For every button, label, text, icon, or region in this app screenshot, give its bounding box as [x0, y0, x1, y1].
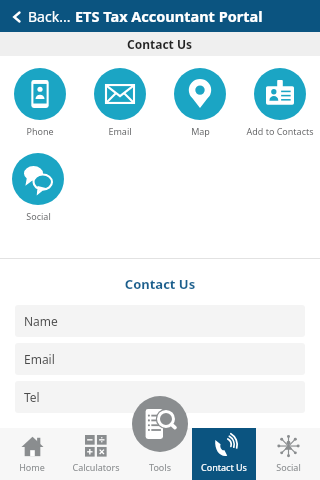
button[interactable]: Tel	[15, 381, 305, 413]
button[interactable]: Add to Contacts	[242, 66, 318, 139]
staticText: Email	[24, 351, 55, 367]
staticText: Name	[24, 313, 58, 329]
staticText: Contact Us	[201, 461, 247, 473]
button[interactable]: Social	[0, 151, 76, 224]
staticText: Add to Contacts	[246, 125, 314, 137]
button[interactable]: Phone	[2, 66, 78, 139]
button[interactable]: Name	[15, 305, 305, 337]
staticText: Back...	[28, 7, 71, 26]
staticText: Phone	[26, 125, 54, 137]
button[interactable]: Social	[256, 428, 320, 480]
staticText: Tel	[24, 389, 40, 405]
staticText: Contact Us	[0, 275, 320, 293]
button[interactable]: Contact Us	[192, 428, 256, 480]
button[interactable]: Map	[162, 66, 238, 139]
staticText: Social	[26, 210, 51, 222]
staticText: ETS Tax Accountant Portal	[75, 6, 263, 26]
staticText: Contact Us	[127, 36, 193, 52]
staticText: Social	[276, 461, 301, 473]
button[interactable]: Email	[15, 343, 305, 375]
staticText: Home	[19, 461, 45, 473]
staticText: Map	[191, 125, 210, 137]
staticText: Tools	[149, 461, 171, 473]
button[interactable]: Back...	[6, 7, 75, 26]
staticText: Calculators	[72, 461, 120, 473]
button[interactable]: Calculators	[64, 428, 128, 480]
button[interactable]: Home	[0, 428, 64, 480]
button[interactable]: Tools	[132, 396, 188, 452]
staticText: Email	[108, 125, 132, 137]
button[interactable]: Email	[82, 66, 158, 139]
button[interactable]: Tools	[128, 428, 192, 480]
